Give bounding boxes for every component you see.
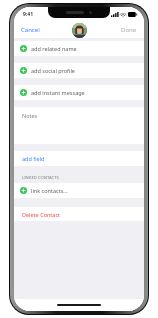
staticText: Notes [22,112,38,119]
button[interactable]: Cancel [14,23,47,37]
staticText: Delete Contact [22,211,61,218]
button[interactable]: Notes [14,107,144,144]
button[interactable]: add field [14,151,144,166]
staticText: Done [121,26,137,34]
staticText: add related name [31,45,77,52]
button[interactable]: Done [114,23,144,37]
staticText: link contacts... [31,187,68,194]
button[interactable]: Delete Contact [14,207,144,221]
staticText: 9:41 [23,11,33,18]
button[interactable]: add related name [14,41,144,56]
staticText: add social profile [31,67,75,74]
staticText: Cancel [21,26,40,34]
staticText: add field [22,155,45,162]
button[interactable]: add social profile [14,63,144,78]
button[interactable]: add instant message [14,85,144,100]
staticText: LINKED CONTACTS [22,175,59,181]
staticText: add instant message [31,89,85,96]
button[interactable]: link contacts... [14,183,144,198]
button[interactable]: Contact photo [72,23,87,38]
